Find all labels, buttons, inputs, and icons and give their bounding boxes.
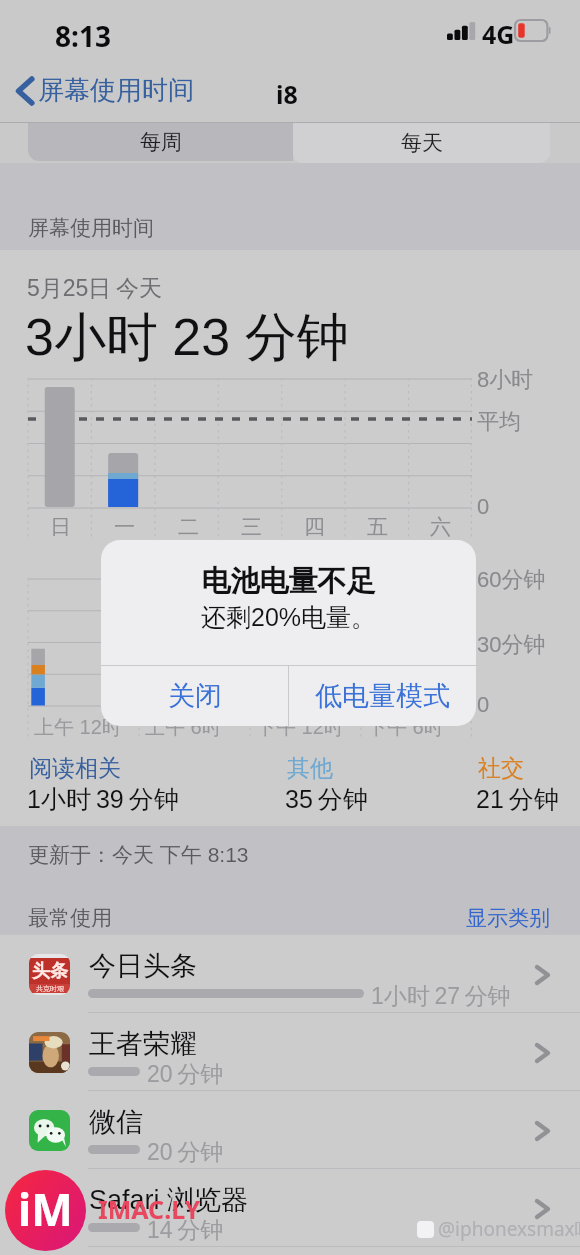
button[interactable]: 微信 [0, 1091, 580, 1169]
staticText: 1小时 39 分钟 [27, 784, 179, 815]
button[interactable]: Back [10, 70, 200, 111]
staticText: 日 [50, 514, 71, 540]
staticText: 四 [304, 514, 325, 540]
staticText: 20 分钟 [147, 1138, 224, 1167]
staticText: 平均 [477, 408, 521, 436]
staticText: 30分钟 [477, 631, 546, 659]
staticText: 8小时 [477, 366, 534, 394]
staticText: 8:13 [55, 17, 111, 55]
staticText: Safari 浏览器 [89, 1183, 249, 1217]
staticText: 五 [367, 514, 388, 540]
staticText: 更新于：今天 下午 8:13 [28, 842, 249, 868]
staticText: 低电量模式 [315, 679, 450, 713]
staticText: 4G [482, 17, 515, 51]
button[interactable]: 低电量模式 [289, 666, 476, 726]
staticText: 60分钟 [477, 566, 546, 594]
staticText: 1小时 27 分钟 [371, 982, 511, 1011]
staticText: 0 [477, 692, 490, 717]
staticText: 一 [114, 514, 135, 540]
staticText: 下午 6时 [367, 715, 444, 740]
staticText: 二 [178, 514, 199, 540]
staticText: 下午 12时 [256, 715, 344, 740]
button[interactable]: 每周 [28, 123, 293, 161]
button[interactable]: 显示类别 [466, 905, 550, 931]
staticText: IMAC.LY [98, 1192, 201, 1226]
staticText: 0 [477, 494, 490, 519]
button[interactable]: 每天 [293, 123, 550, 163]
staticText: 屏幕使用时间 [38, 74, 194, 107]
staticText: 5月25日 今天 [27, 274, 162, 303]
staticText: 还剩20%电量。 [101, 602, 476, 633]
button[interactable]: 头条 [0, 935, 580, 1013]
staticText: 三 [241, 514, 262, 540]
staticText: 屏幕使用时间 [28, 215, 154, 241]
staticText: 最常使用 [28, 905, 112, 931]
staticText: 14 分钟 [147, 1216, 224, 1245]
staticText: 电池电量不足 [101, 563, 476, 600]
button[interactable]: Safari 浏览器 [0, 1169, 580, 1247]
staticText: iM [18, 1179, 73, 1239]
button[interactable]: 关闭 [101, 666, 288, 726]
staticText: 20 分钟 [147, 1060, 224, 1089]
staticText: 今日头条 [89, 949, 197, 983]
staticText: 社交 [478, 754, 524, 783]
other: Open 今日头条 [535, 965, 550, 985]
staticText: 显示类别 [466, 905, 550, 931]
other: Open Safari 浏览器 [535, 1199, 550, 1219]
staticText: @iphonexsmax吧 [438, 1216, 580, 1242]
staticText: 21 分钟 [476, 784, 559, 815]
staticText: 3小时 23 分钟 [25, 305, 349, 371]
staticText: 关闭 [168, 679, 222, 713]
staticText: 阅读相关 [29, 754, 121, 783]
staticText: 每天 [401, 130, 443, 156]
staticText: 上午 12时 [34, 715, 122, 740]
staticText: 王者荣耀 [89, 1027, 197, 1061]
staticText: 35 分钟 [285, 784, 368, 815]
staticText: 共克时艰 [36, 984, 64, 993]
staticText: 每周 [140, 129, 182, 155]
other: Open 王者荣耀 [535, 1043, 550, 1063]
other: Open 微信 [535, 1121, 550, 1141]
staticText: i8 [276, 77, 298, 111]
other: Back [16, 76, 34, 106]
button[interactable]: 王者荣耀 [0, 1013, 580, 1091]
staticText: 头条 [32, 960, 68, 983]
staticText: 微信 [89, 1105, 143, 1139]
staticText: 其他 [287, 754, 333, 783]
staticText: 六 [430, 514, 451, 540]
staticText: 上午 6时 [145, 715, 222, 740]
